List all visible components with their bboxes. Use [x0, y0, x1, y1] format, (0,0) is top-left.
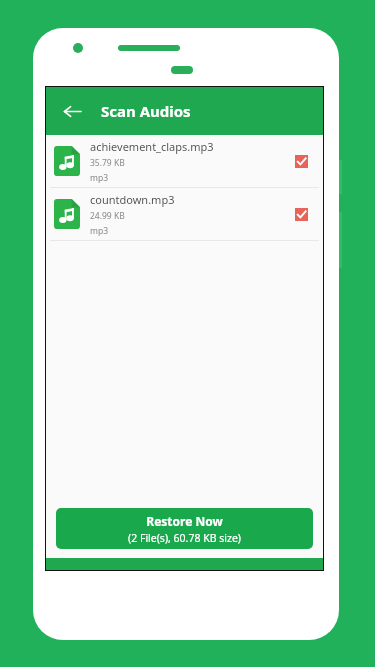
staticText: mp3: [90, 172, 109, 184]
staticText: Restore Now: [146, 513, 223, 529]
staticText: (2 File(s), 60.78 KB size): [128, 531, 241, 545]
button[interactable]: Back: [56, 95, 88, 127]
staticText: achievement_claps.mp3: [90, 139, 214, 154]
staticText: countdown.mp3: [90, 192, 175, 207]
button[interactable]: achievement_claps.mp3: [46, 135, 323, 187]
button[interactable]: Restore Now: [56, 508, 313, 549]
button[interactable]: countdown.mp3: [46, 188, 323, 240]
button[interactable]: Selected: [287, 147, 315, 175]
staticText: mp3: [90, 225, 109, 237]
staticText: 24.99 KB: [90, 210, 125, 222]
staticText: 35.79 KB: [90, 157, 125, 169]
button[interactable]: Selected: [287, 200, 315, 228]
staticText: Scan Audios: [101, 101, 191, 121]
